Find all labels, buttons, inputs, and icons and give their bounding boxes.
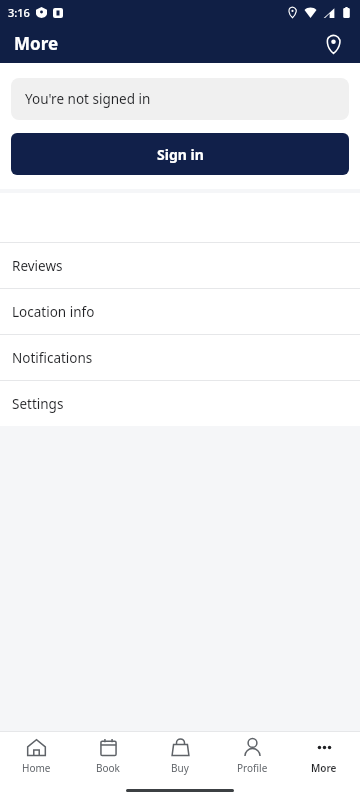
button[interactable]: Buy (144, 732, 216, 780)
staticText: More (311, 761, 337, 775)
staticText: You're not signed in (25, 90, 151, 108)
staticText: Book (96, 761, 120, 775)
button[interactable]: Location info (0, 289, 360, 334)
staticText: Notifications (12, 349, 93, 367)
button[interactable]: Location (316, 27, 350, 61)
staticText: Location info (12, 303, 95, 321)
staticText: Settings (12, 395, 64, 413)
staticText: Profile (237, 761, 268, 775)
button[interactable]: Sign in (11, 133, 349, 175)
staticText: Home (22, 761, 51, 775)
button[interactable]: Settings (0, 381, 360, 426)
button[interactable]: Home (0, 732, 72, 780)
button[interactable]: Profile (216, 732, 288, 780)
button[interactable]: Reviews (0, 243, 360, 288)
button[interactable]: More (288, 732, 360, 780)
button[interactable]: Notifications (0, 335, 360, 380)
staticText: 3:16 (8, 5, 30, 20)
staticText: Buy (171, 761, 189, 775)
staticText: Sign in (157, 145, 204, 164)
staticText: More (14, 32, 59, 55)
button[interactable]: Book (72, 732, 144, 780)
staticText: Reviews (12, 257, 63, 275)
